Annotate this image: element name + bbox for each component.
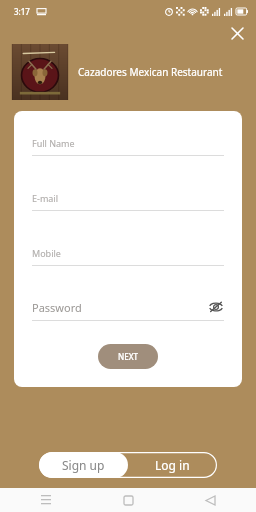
button[interactable]: NEXT [98,344,158,369]
button[interactable]: Recents [36,490,56,510]
staticText: Mobile [32,247,61,259]
button[interactable]: Full Name [32,137,224,156]
staticText: Full Name [32,137,75,149]
button[interactable]: E-mail [32,192,224,211]
staticText: Cazadores Mexican Restaurant [78,65,223,79]
button[interactable]: Home [118,490,138,510]
button[interactable]: Back [200,490,220,510]
button[interactable]: Mobile [32,247,224,266]
staticText: 3:17 [14,6,30,17]
button[interactable]: Password [32,299,224,321]
staticText: Password [32,300,82,315]
staticText: NEXT [118,351,139,362]
staticText: Sign up [62,457,105,473]
button[interactable]: Close [226,22,248,44]
staticText: Log in [155,457,190,473]
staticText: E-mail [32,192,59,204]
button[interactable]: Show password [208,299,224,315]
button[interactable]: Sign up [39,452,128,478]
button[interactable]: Log in [128,452,217,478]
